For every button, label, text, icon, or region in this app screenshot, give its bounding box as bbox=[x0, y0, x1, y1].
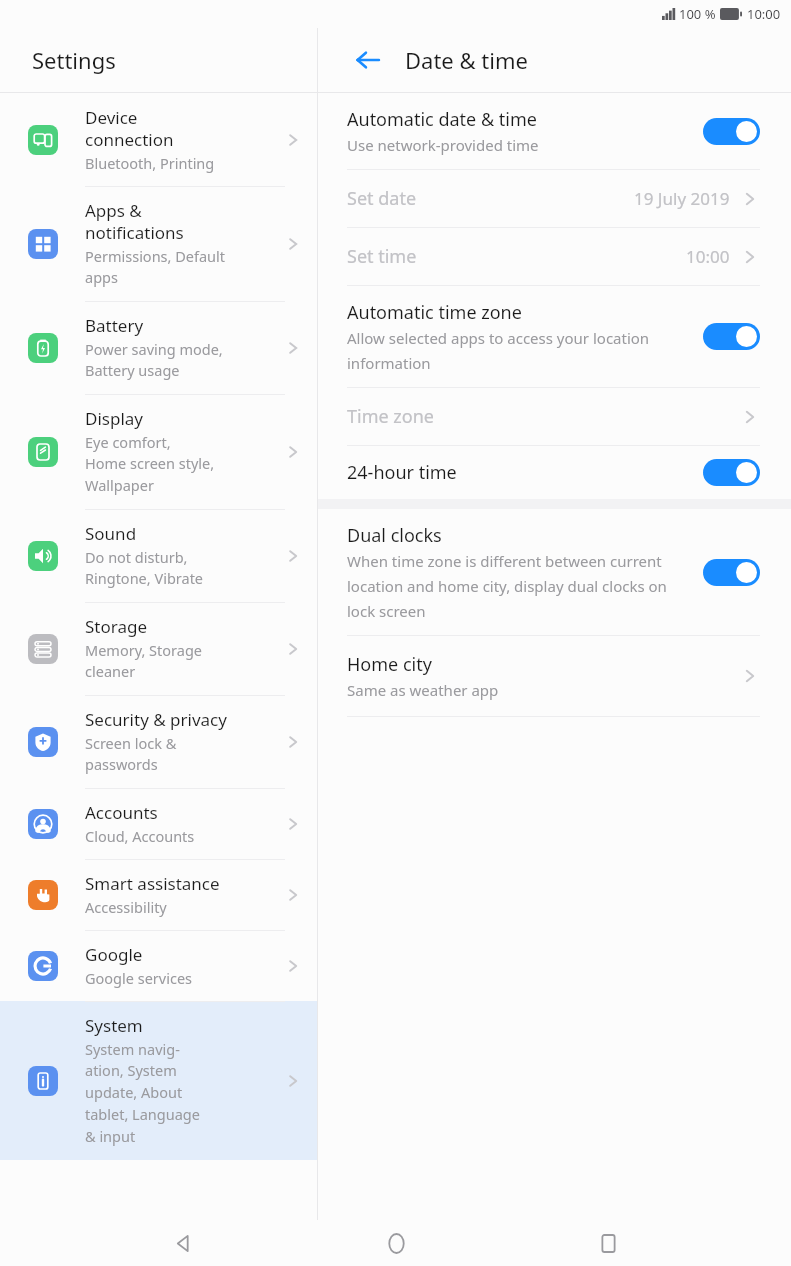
button[interactable]: Automatic time zone bbox=[318, 286, 791, 387]
staticText: Memory, Storage cleaner bbox=[85, 640, 203, 682]
staticText: Eye comfort, Home screen style, Wallpape… bbox=[85, 432, 215, 496]
button[interactable]: Dual clocks bbox=[318, 509, 791, 635]
staticText: Date & time bbox=[405, 45, 528, 75]
button[interactable]: Toggle on bbox=[703, 323, 760, 350]
staticText: Set date bbox=[347, 186, 417, 211]
staticText: Home city bbox=[347, 652, 432, 677]
staticText: Smart assistance bbox=[85, 872, 220, 895]
staticText: Allow selected apps to access your locat… bbox=[347, 328, 691, 373]
button[interactable]: Accounts bbox=[0, 788, 317, 859]
button[interactable]: Automatic date & time bbox=[318, 93, 791, 169]
staticText: 10:00 bbox=[686, 245, 730, 268]
button[interactable]: Toggle on bbox=[703, 118, 760, 145]
staticText: Time zone bbox=[347, 404, 434, 429]
staticText: Storage bbox=[85, 615, 148, 638]
button[interactable]: Home bbox=[366, 1220, 426, 1266]
staticText: 100 % bbox=[679, 5, 716, 23]
staticText: System bbox=[85, 1014, 143, 1037]
button[interactable]: Storage bbox=[0, 602, 317, 695]
staticText: Screen lock & passwords bbox=[85, 733, 177, 775]
staticText: Accessibility bbox=[85, 897, 167, 917]
staticText: Apps & notifications bbox=[85, 199, 184, 244]
button[interactable]: Apps & notifications bbox=[0, 186, 317, 301]
staticText: Same as weather app bbox=[347, 680, 499, 700]
button[interactable]: Battery bbox=[0, 301, 317, 394]
staticText: Cloud, Accounts bbox=[85, 826, 195, 846]
staticText: Set time bbox=[347, 244, 417, 269]
staticText: When time zone is different between curr… bbox=[347, 551, 691, 621]
button[interactable]: Sound bbox=[0, 509, 317, 602]
staticText: Display bbox=[85, 407, 143, 430]
button[interactable]: System bbox=[0, 1001, 317, 1160]
staticText: Do not disturb, Ringtone, Vibrate bbox=[85, 547, 204, 589]
button[interactable]: Toggle on bbox=[703, 459, 760, 486]
button[interactable]: Set time bbox=[318, 228, 791, 285]
button[interactable]: 24-hour time bbox=[318, 446, 791, 499]
staticText: Bluetooth, Printing bbox=[85, 153, 215, 173]
staticText: Google bbox=[85, 943, 143, 966]
staticText: Power saving mode, Battery usage bbox=[85, 339, 223, 381]
button[interactable]: Back bbox=[346, 38, 390, 82]
staticText: Permissions, Default apps bbox=[85, 246, 226, 288]
button[interactable]: Security & privacy bbox=[0, 695, 317, 788]
button[interactable]: Toggle on bbox=[703, 559, 760, 586]
button[interactable]: Device connection bbox=[0, 93, 317, 186]
button[interactable]: Home city bbox=[318, 636, 791, 716]
staticText: Security & privacy bbox=[85, 708, 227, 731]
button[interactable]: Back bbox=[153, 1220, 213, 1266]
staticText: Sound bbox=[85, 522, 137, 545]
staticText: System navig- ation, System update, Abou… bbox=[85, 1039, 200, 1147]
staticText: Automatic date & time bbox=[347, 107, 537, 132]
button[interactable]: Smart assistance bbox=[0, 859, 317, 930]
staticText: Dual clocks bbox=[347, 523, 442, 548]
button[interactable]: Time zone bbox=[318, 388, 791, 445]
staticText: Google services bbox=[85, 968, 193, 988]
button[interactable]: Google bbox=[0, 930, 317, 1001]
staticText: Device connection bbox=[85, 106, 174, 151]
staticText: Accounts bbox=[85, 801, 158, 824]
staticText: Use network-provided time bbox=[347, 135, 539, 155]
button[interactable]: Set date bbox=[318, 170, 791, 227]
staticText: 19 July 2019 bbox=[634, 187, 730, 210]
button[interactable]: Recents bbox=[578, 1220, 638, 1266]
staticText: Automatic time zone bbox=[347, 300, 522, 325]
staticText: 10:00 bbox=[747, 5, 781, 23]
staticText: Settings bbox=[32, 45, 116, 75]
button[interactable]: Display bbox=[0, 394, 317, 509]
staticText: Battery bbox=[85, 314, 144, 337]
staticText: 24-hour time bbox=[347, 460, 457, 485]
